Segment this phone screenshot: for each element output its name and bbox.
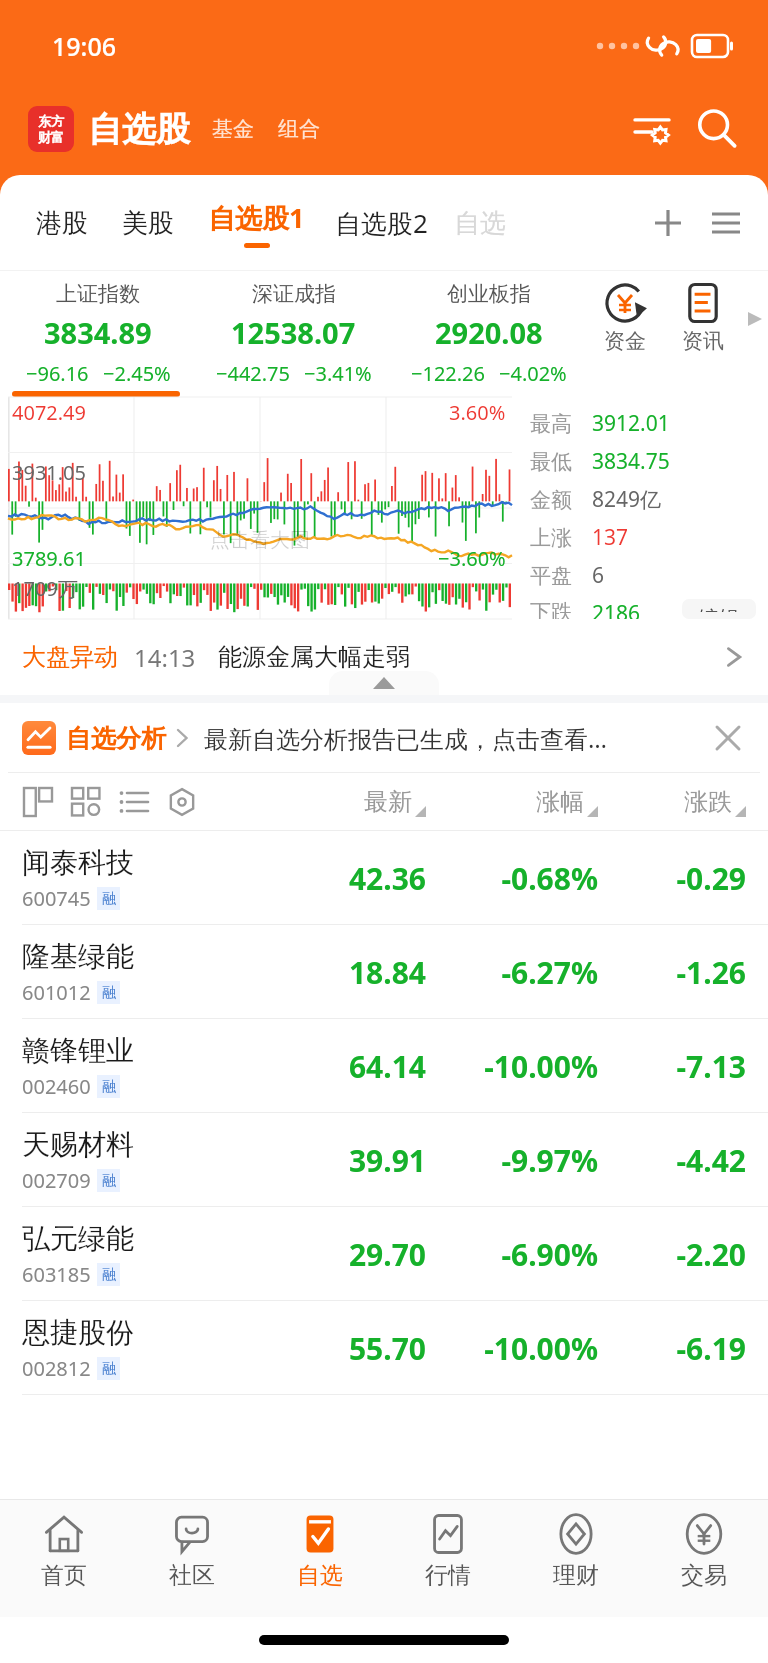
staticText: 深证成指: [252, 281, 336, 307]
button[interactable]: 上证指数: [0, 281, 586, 387]
staticText: -7.13: [598, 1046, 746, 1087]
staticText: -6.27%: [426, 952, 598, 993]
button[interactable]: 行情: [384, 1513, 512, 1590]
staticText: -10.00%: [426, 1046, 598, 1087]
button[interactable]: 资讯: [664, 281, 742, 354]
button[interactable]: 列表: [114, 782, 154, 822]
button[interactable]: 天赐材料: [0, 1113, 768, 1207]
staticText: −3.60%: [438, 545, 506, 572]
staticText: 资讯: [682, 328, 724, 354]
staticText: 理财: [553, 1561, 599, 1590]
staticText: -2.20: [598, 1234, 746, 1275]
button[interactable]: 自选股: [88, 108, 190, 151]
button[interactable]: 弘元绿能: [0, 1207, 768, 1301]
staticText: 3834.75: [592, 447, 670, 476]
button[interactable]: 设置: [162, 782, 202, 822]
button[interactable]: 编辑: [682, 599, 756, 619]
staticText: 19:06: [52, 29, 117, 63]
staticText: 融: [102, 1266, 116, 1284]
staticText: -10.00%: [426, 1328, 598, 1369]
staticText: 4072.49: [12, 399, 86, 426]
button[interactable]: 大盘异动: [0, 619, 768, 695]
staticText: −122.26: [411, 360, 485, 387]
staticText: 弘元绿能: [22, 1221, 134, 1256]
button[interactable]: 交易: [640, 1513, 768, 1590]
button[interactable]: 组合: [278, 116, 320, 142]
staticText: 600745: [22, 885, 91, 912]
staticText: -0.29: [598, 858, 746, 899]
button[interactable]: Settings: [628, 105, 676, 153]
staticText: 002812: [22, 1355, 91, 1382]
staticText: -6.19: [598, 1328, 746, 1369]
staticText: 恩捷股份: [22, 1315, 134, 1350]
button[interactable]: 美股: [122, 207, 174, 240]
button[interactable]: 自选股1: [208, 199, 305, 248]
staticText: 8249亿: [592, 485, 662, 514]
staticText: 融: [102, 890, 116, 908]
button[interactable]: Collapse: [329, 671, 439, 695]
button[interactable]: 4072.49: [8, 397, 512, 619]
staticText: -1.26: [598, 952, 746, 993]
button[interactable]: Add: [646, 201, 690, 245]
button[interactable]: 布局: [18, 782, 58, 822]
staticText: 64.14: [276, 1046, 426, 1087]
staticText: 2186: [592, 599, 641, 619]
staticText: 601012: [22, 979, 91, 1006]
staticText: 下跌: [530, 599, 592, 619]
button[interactable]: 首页: [0, 1513, 128, 1590]
staticText: 最低: [530, 449, 592, 475]
button[interactable]: Menu: [704, 201, 748, 245]
staticText: -0.68%: [426, 858, 598, 899]
staticText: −442.75: [216, 360, 290, 387]
button[interactable]: 闻泰科技: [0, 831, 768, 925]
button[interactable]: 社区: [128, 1513, 256, 1590]
button[interactable]: 自选股2: [335, 205, 428, 241]
button[interactable]: 隆基绿能: [0, 925, 768, 1019]
button[interactable]: 涨跌: [598, 787, 746, 817]
button[interactable]: 港股: [36, 207, 88, 240]
staticText: 最新: [364, 787, 412, 817]
button[interactable]: 最新: [276, 787, 426, 817]
staticText: 1709万: [12, 575, 78, 602]
staticText: −96.16: [26, 360, 89, 387]
staticText: 自选分析: [66, 723, 166, 754]
button[interactable]: 资金: [586, 281, 664, 354]
staticText: 财富: [38, 129, 64, 145]
button[interactable]: 自选分析: [22, 721, 190, 755]
staticText: 创业板指: [447, 281, 531, 307]
staticText: 赣锋锂业: [22, 1033, 134, 1068]
staticText: 大盘异动: [22, 642, 118, 672]
staticText: 3931.05: [12, 459, 86, 486]
staticText: 涨幅: [536, 787, 584, 817]
staticText: -4.42: [598, 1140, 746, 1181]
button[interactable]: Search: [692, 104, 742, 154]
button[interactable]: 基金: [212, 116, 254, 142]
button[interactable]: 赣锋锂业: [0, 1019, 768, 1113]
button[interactable]: 自选: [256, 1513, 384, 1590]
staticText: 交易: [681, 1561, 727, 1590]
staticText: 涨跌: [684, 787, 732, 817]
staticText: 137: [592, 523, 629, 552]
button[interactable]: 最新自选分析报告已生成，点击查看…: [204, 722, 708, 755]
button[interactable]: 网格: [66, 782, 106, 822]
staticText: 能源金属大幅走弱: [218, 642, 410, 672]
staticText: 55.70: [276, 1328, 426, 1369]
button[interactable]: 涨幅: [426, 787, 598, 817]
staticText: 行情: [425, 1561, 471, 1590]
staticText: 社区: [169, 1561, 215, 1590]
staticText: 42.36: [276, 858, 426, 899]
staticText: 首页: [41, 1561, 87, 1590]
button[interactable]: Close: [708, 718, 748, 758]
staticText: 融: [102, 1360, 116, 1378]
staticText: 12538.07: [231, 313, 356, 352]
staticText: −3.41%: [304, 360, 372, 387]
staticText: 上证指数: [56, 281, 140, 307]
staticText: 最高: [530, 411, 592, 437]
staticText: 编辑: [698, 606, 740, 612]
staticText: 002460: [22, 1073, 91, 1100]
button[interactable]: 恩捷股份: [0, 1301, 768, 1395]
staticText: 18.84: [276, 952, 426, 993]
staticText: 6: [592, 561, 605, 590]
staticText: −2.45%: [103, 360, 171, 387]
button[interactable]: 理财: [512, 1513, 640, 1590]
